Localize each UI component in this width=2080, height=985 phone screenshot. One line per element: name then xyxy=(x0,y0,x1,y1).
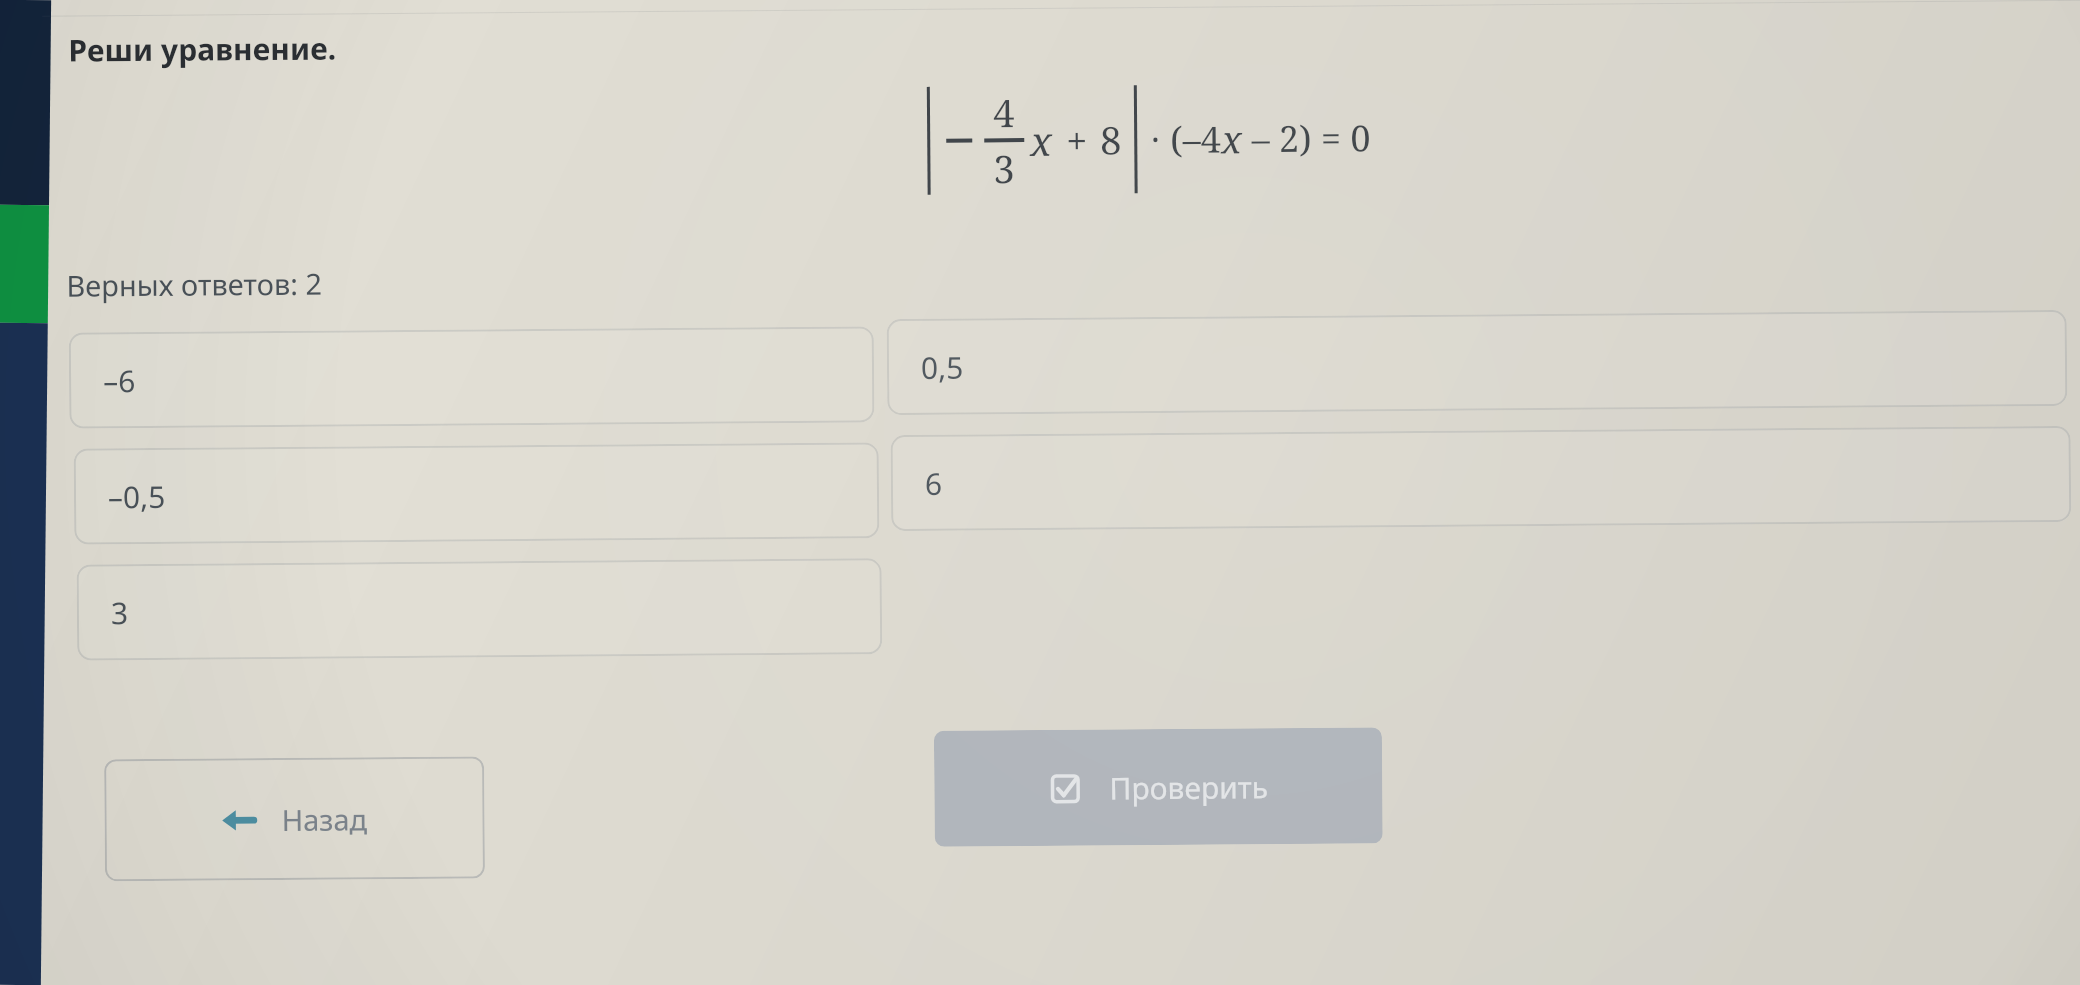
staticText: –0,5 xyxy=(108,476,166,517)
staticText: 8 xyxy=(1100,113,1122,165)
staticText: 6 xyxy=(925,463,943,504)
staticText: Назад xyxy=(281,799,368,839)
staticText: 4 xyxy=(993,86,1015,138)
staticText: 3 xyxy=(993,142,1016,194)
button[interactable]: 6 xyxy=(890,426,2071,531)
button[interactable]: –6 xyxy=(69,326,874,429)
staticText: · xyxy=(1151,116,1160,162)
staticText: – 2) = 0 xyxy=(1242,113,1371,163)
staticText: x xyxy=(1030,113,1052,167)
staticText: Реши уравнение. xyxy=(68,27,337,71)
staticText: Проверить xyxy=(1109,766,1268,808)
staticText: 3 xyxy=(111,592,129,633)
button[interactable]: –0,5 xyxy=(74,442,879,545)
staticText: + xyxy=(1066,114,1088,166)
other: Back xyxy=(221,803,256,837)
button[interactable]: Back xyxy=(104,756,485,881)
button[interactable]: Проверить xyxy=(934,727,1383,847)
staticText: Верных ответов: 2 xyxy=(66,264,322,305)
staticText: x xyxy=(1221,112,1242,165)
button[interactable]: 3 xyxy=(76,558,882,660)
staticText: 0,5 xyxy=(921,347,964,388)
button[interactable]: 0,5 xyxy=(887,310,2067,415)
staticText: (–4 xyxy=(1170,115,1221,164)
staticText: –6 xyxy=(103,360,136,401)
